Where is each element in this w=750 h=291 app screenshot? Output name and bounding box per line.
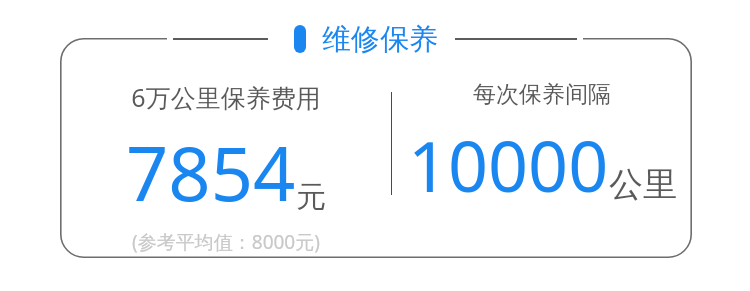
staticText: (参考平均值：8000元): [132, 229, 320, 255]
button[interactable]: 6万公里保养费用: [60, 38, 391, 258]
other: Section marker: [294, 25, 306, 53]
staticText: 维修保养: [322, 21, 438, 57]
staticText: 公里: [609, 163, 677, 206]
staticText: 每次保养间隔: [473, 80, 611, 109]
button[interactable]: Section marker: [173, 21, 577, 57]
staticText: 7854: [126, 122, 296, 223]
staticText: 元: [296, 178, 326, 216]
staticText: 10000: [408, 117, 609, 212]
button[interactable]: 每次保养间隔: [392, 38, 692, 258]
staticText: 6万公里保养费用: [131, 80, 321, 114]
